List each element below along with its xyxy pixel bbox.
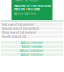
staticText: Action link four xyxy=(21,53,43,56)
staticText: Fourth row of list xyxy=(2,35,26,38)
staticText: First row of list content xyxy=(2,23,34,26)
button[interactable]: Action link two xyxy=(1,45,63,48)
staticText: Action link one xyxy=(21,41,43,44)
button[interactable]: Second row of list content xyxy=(1,27,63,30)
staticText: caption text here xyxy=(13,12,36,15)
button[interactable]: ‹ BACK TO THE LIST xyxy=(13,0,37,2)
button[interactable]: Action link one xyxy=(1,41,63,44)
button[interactable]: Fourth row of list xyxy=(1,35,63,38)
button[interactable]: First row of list content xyxy=(1,23,63,26)
staticText: HEADING OF THE PAGE GOES xyxy=(13,4,50,7)
staticText: HERE ON TWO LINES xyxy=(13,7,39,11)
staticText: Third row of list content xyxy=(2,31,36,34)
staticText: Second row of list content xyxy=(2,27,39,30)
button[interactable]: Third row of list content xyxy=(1,31,63,34)
staticText: Action link two xyxy=(21,45,42,48)
button[interactable]: Action link four xyxy=(1,53,63,56)
staticText: ‹ BACK TO THE LIST xyxy=(13,0,37,2)
button[interactable]: Action link three xyxy=(1,49,63,52)
staticText: Action link three xyxy=(20,49,44,52)
